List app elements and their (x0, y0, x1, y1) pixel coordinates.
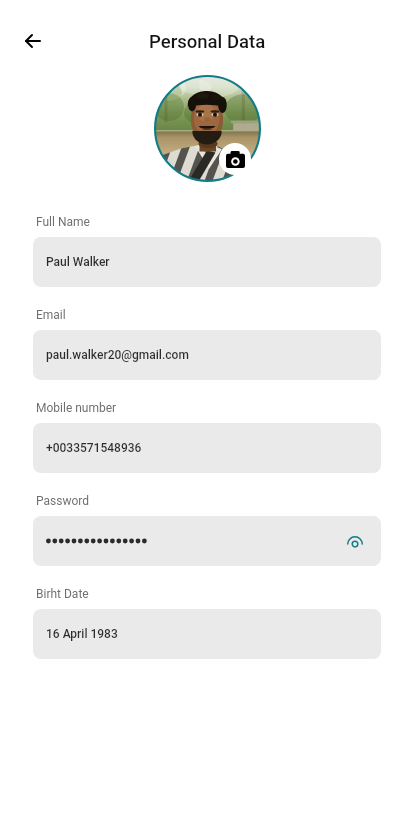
button[interactable]: Show password (342, 529, 368, 555)
button[interactable]: 16 April 1983 (33, 609, 381, 659)
staticText: Birht Date (36, 587, 89, 601)
staticText: Email (36, 308, 66, 322)
staticText: Paul Walker (46, 255, 110, 269)
button[interactable]: Change profile photo (219, 143, 251, 175)
staticText: Password (36, 494, 90, 508)
button[interactable]: Paul Walker (33, 237, 381, 287)
button[interactable]: Show password (33, 516, 381, 566)
button[interactable]: paul.walker20@gmail.com (33, 330, 381, 380)
staticText: 16 April 1983 (46, 627, 118, 641)
staticText: Mobile number (36, 401, 117, 415)
staticText: +0033571548936 (46, 441, 142, 455)
button[interactable]: Back (11, 19, 55, 63)
button[interactable]: +0033571548936 (33, 423, 381, 473)
staticText: Personal Data (149, 31, 266, 53)
staticText: paul.walker20@gmail.com (46, 348, 189, 362)
staticText: Full Name (36, 215, 90, 229)
